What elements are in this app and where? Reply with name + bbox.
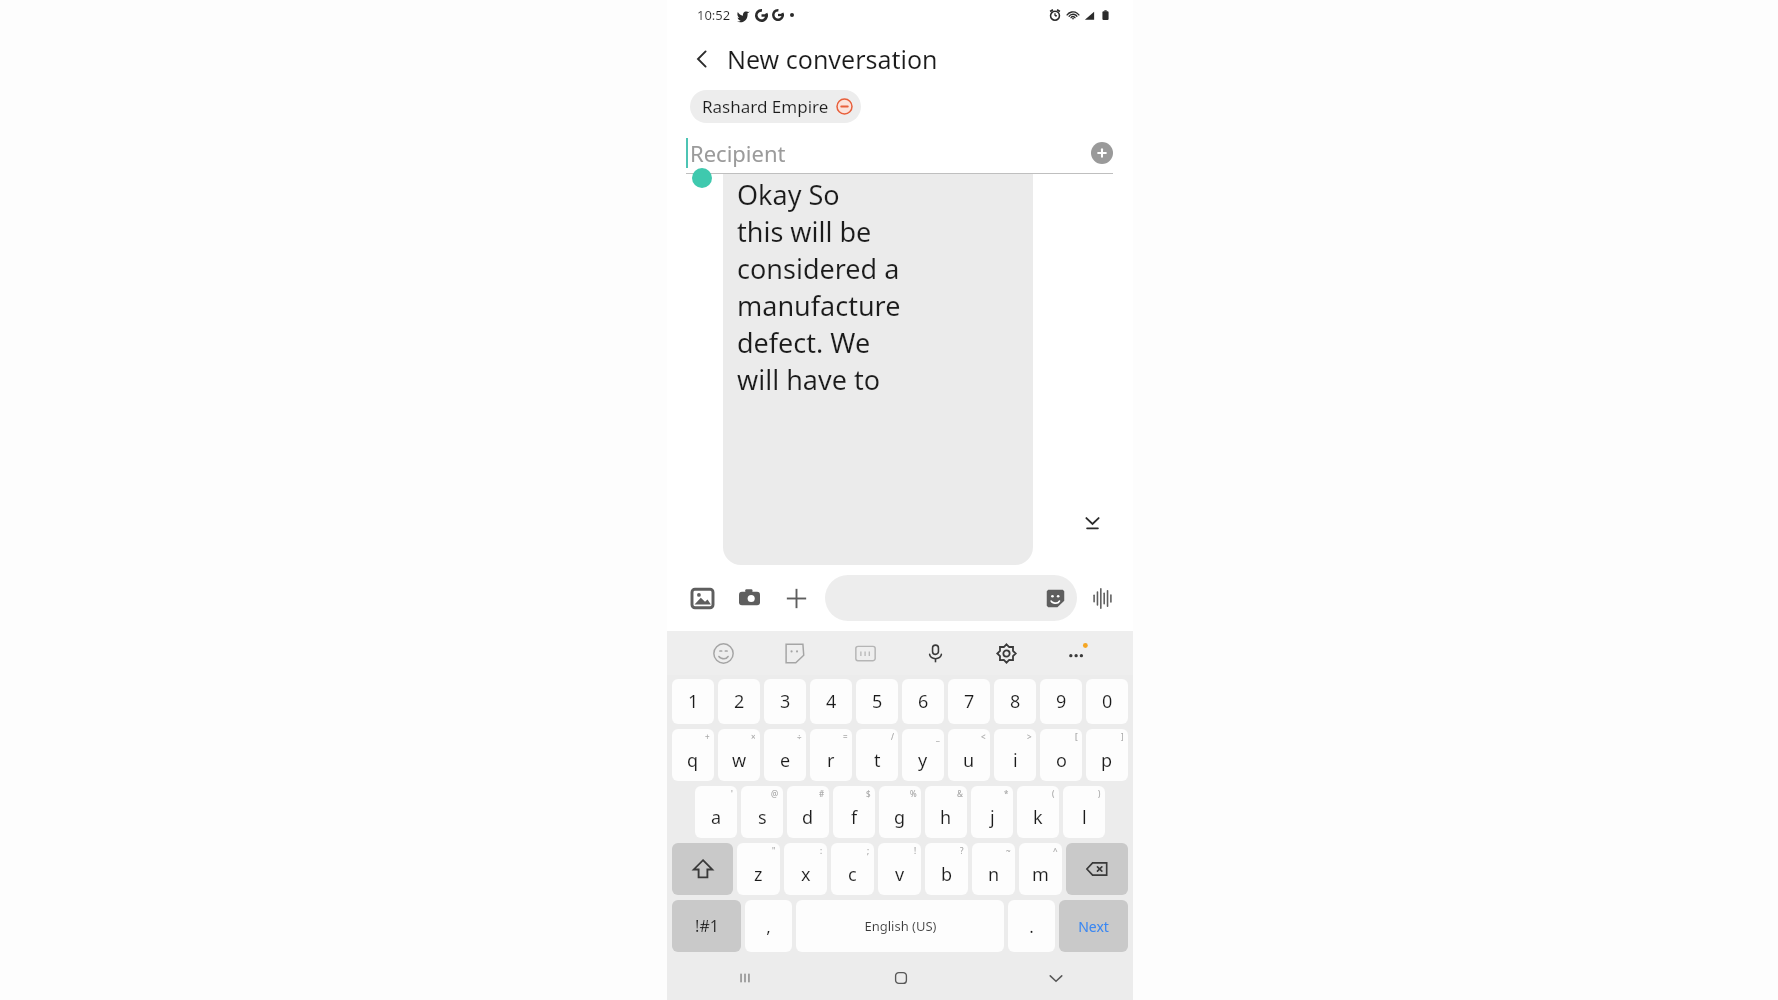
staticText: j (990, 805, 995, 830)
staticText: * (1004, 788, 1009, 799)
button[interactable]: Home (823, 956, 978, 1000)
button[interactable]: Okay So (723, 174, 1033, 565)
button[interactable]: Next (1059, 900, 1128, 952)
staticText: t (874, 748, 881, 773)
button[interactable]: = (810, 729, 852, 781)
button[interactable]: + (672, 729, 714, 781)
button[interactable]: 6 (902, 679, 944, 724)
button[interactable]: 8 (994, 679, 1036, 724)
staticText: ] (1121, 731, 1124, 742)
button[interactable]: Back (683, 40, 721, 78)
button[interactable]: Hide keyboard (978, 956, 1133, 1000)
staticText: 0 (1102, 689, 1113, 714)
staticText: w (732, 748, 747, 773)
button[interactable]: GIF (850, 638, 880, 668)
staticText: + (705, 731, 710, 742)
button[interactable]: Recent apps (667, 956, 823, 1000)
button[interactable]: 2 (718, 679, 760, 724)
button[interactable]: : (784, 843, 827, 895)
button[interactable]: Shift (672, 843, 733, 895)
staticText: ( (1052, 788, 1055, 799)
staticText: New conversation (727, 42, 938, 76)
button[interactable]: % (879, 786, 921, 838)
button[interactable]: 0 (1086, 679, 1128, 724)
staticText: English (US) (864, 917, 937, 935)
staticText: & (957, 788, 963, 799)
staticText: 8 (1010, 689, 1021, 714)
button[interactable]: Attach image (687, 583, 717, 613)
staticText: r (827, 748, 835, 773)
button[interactable]: 4 (810, 679, 852, 724)
staticText: manufacture (737, 287, 901, 324)
staticText: a (711, 805, 722, 830)
staticText: Rashard Empire (702, 95, 829, 118)
button[interactable]: Backspace (1066, 843, 1128, 895)
button[interactable]: ÷ (764, 729, 806, 781)
staticText: ! (914, 845, 917, 856)
button[interactable]: ; (831, 843, 874, 895)
staticText: e (780, 748, 791, 773)
button[interactable]: !#1 (672, 900, 741, 952)
staticText: f (851, 805, 858, 830)
staticText: 6 (918, 689, 929, 714)
staticText: Okay So (737, 176, 840, 213)
button[interactable]: Stickers (825, 575, 1077, 621)
button[interactable]: < (948, 729, 990, 781)
button[interactable]: , (745, 900, 792, 952)
staticText: # (819, 788, 825, 799)
button[interactable]: English (US) (796, 900, 1004, 952)
button[interactable]: Add recipient (1091, 142, 1113, 164)
staticText: 3 (780, 689, 791, 714)
button[interactable]: ! (878, 843, 921, 895)
button[interactable]: _ (902, 729, 944, 781)
button[interactable]: * (971, 786, 1013, 838)
button[interactable]: ' (695, 786, 737, 838)
button[interactable]: $ (833, 786, 875, 838)
staticText: @ (771, 788, 779, 799)
button[interactable]: ? (925, 843, 968, 895)
button[interactable]: / (856, 729, 898, 781)
button[interactable]: Emoji (708, 638, 738, 668)
button[interactable]: & (925, 786, 967, 838)
button[interactable]: More (1062, 638, 1092, 668)
button[interactable]: Voice input (920, 638, 950, 668)
staticText: Recipient (690, 138, 786, 168)
button[interactable]: Camera (734, 583, 764, 613)
button[interactable]: Voice message (1087, 583, 1117, 613)
button[interactable]: More options (781, 583, 811, 613)
button[interactable]: 7 (948, 679, 990, 724)
staticText: n (988, 862, 1000, 887)
button[interactable]: @ (741, 786, 783, 838)
button[interactable]: Stickers (1042, 585, 1068, 611)
button[interactable]: Keyboard settings (991, 638, 1021, 668)
button[interactable]: . (1008, 900, 1055, 952)
staticText: 7 (964, 689, 975, 714)
button[interactable]: 9 (1040, 679, 1082, 724)
staticText: 5 (872, 689, 883, 714)
staticText: p (1101, 748, 1113, 773)
staticText: _ (936, 731, 940, 742)
button[interactable]: Rashard Empire (690, 90, 861, 123)
staticText: this will be (737, 213, 872, 250)
button[interactable]: > (994, 729, 1036, 781)
button[interactable]: × (718, 729, 760, 781)
button[interactable]: " (737, 843, 780, 895)
button[interactable]: ^ (1019, 843, 1062, 895)
staticText: q (687, 748, 699, 773)
button[interactable]: ~ (972, 843, 1015, 895)
staticText: % (910, 788, 917, 799)
staticText: z (754, 862, 763, 887)
button[interactable]: ( (1017, 786, 1059, 838)
staticText: ~ (1006, 845, 1011, 856)
button[interactable]: Stickers (779, 638, 809, 668)
button[interactable]: 3 (764, 679, 806, 724)
button[interactable]: Scroll to bottom (1073, 503, 1111, 541)
button[interactable]: # (787, 786, 829, 838)
staticText: ÷ (797, 731, 802, 742)
button[interactable]: 5 (856, 679, 898, 724)
button[interactable]: ) (1063, 786, 1105, 838)
button[interactable]: ] (1086, 729, 1128, 781)
button[interactable]: [ (1040, 729, 1082, 781)
staticText: ) (1098, 788, 1101, 799)
button[interactable]: 1 (672, 679, 714, 724)
